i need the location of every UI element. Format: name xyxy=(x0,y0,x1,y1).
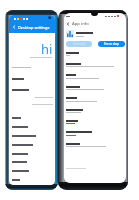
button[interactable] xyxy=(9,140,55,149)
staticText: Uninstall xyxy=(73,42,86,46)
button[interactable] xyxy=(64,106,126,117)
other: Back xyxy=(66,22,70,26)
staticText: Force stop xyxy=(104,42,120,46)
other: Back xyxy=(12,25,16,29)
button[interactable] xyxy=(64,128,126,139)
button[interactable] xyxy=(9,85,55,96)
button[interactable]: Uninstall xyxy=(66,41,92,47)
button[interactable] xyxy=(9,158,55,167)
button[interactable]: Back xyxy=(9,22,55,32)
button[interactable] xyxy=(64,60,126,71)
button[interactable] xyxy=(9,122,55,131)
button[interactable] xyxy=(9,131,55,140)
staticText: App info xyxy=(72,21,89,27)
staticText: hi xyxy=(41,40,53,58)
button[interactable] xyxy=(9,149,55,158)
button[interactable]: Back xyxy=(64,19,126,29)
button[interactable] xyxy=(9,167,55,176)
button[interactable] xyxy=(64,94,126,105)
button[interactable] xyxy=(64,71,126,82)
button[interactable] xyxy=(64,140,126,151)
staticText: Desktop settings xyxy=(18,25,50,30)
button[interactable] xyxy=(64,49,126,60)
button[interactable]: Force stop xyxy=(98,41,125,47)
button[interactable] xyxy=(9,176,55,185)
button[interactable] xyxy=(64,117,126,128)
button[interactable] xyxy=(9,74,55,85)
button[interactable] xyxy=(64,83,126,94)
button[interactable] xyxy=(9,63,55,74)
button[interactable] xyxy=(9,113,55,122)
